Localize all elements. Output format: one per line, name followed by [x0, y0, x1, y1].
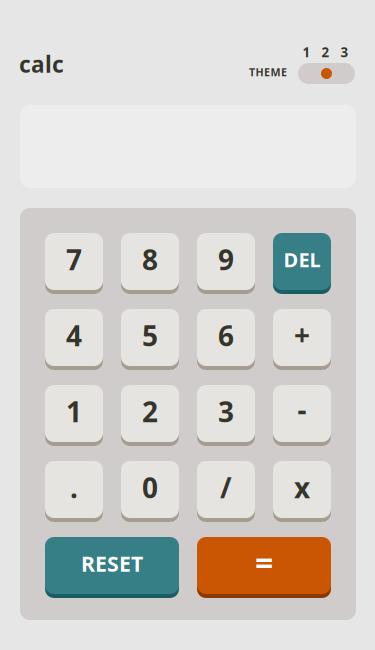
- staticText: +: [294, 316, 310, 353]
- button[interactable]: -: [273, 385, 331, 446]
- button[interactable]: x: [273, 461, 331, 522]
- staticText: 0: [142, 469, 158, 506]
- button[interactable]: /: [197, 461, 255, 522]
- staticText: H: [255, 65, 263, 79]
- staticText: =: [255, 541, 273, 584]
- staticText: T: [249, 65, 255, 79]
- staticText: .: [70, 469, 78, 506]
- staticText: x: [294, 469, 310, 506]
- staticText: 2: [321, 43, 329, 61]
- button[interactable]: 2: [121, 385, 179, 446]
- button[interactable]: .: [45, 461, 103, 522]
- staticText: 4: [66, 317, 82, 354]
- button[interactable]: 5: [121, 309, 179, 370]
- staticText: 3: [218, 393, 234, 430]
- button[interactable]: 7: [45, 233, 103, 294]
- staticText: E: [264, 65, 270, 79]
- button[interactable]: 3: [197, 385, 255, 446]
- staticText: 2: [142, 393, 158, 430]
- button[interactable]: 9: [197, 233, 255, 294]
- staticText: 7: [66, 241, 82, 278]
- button[interactable]: 6: [197, 309, 255, 370]
- staticText: 5: [142, 317, 158, 354]
- staticText: 6: [218, 317, 234, 354]
- staticText: 9: [218, 241, 234, 278]
- staticText: DEL: [283, 246, 320, 273]
- button[interactable]: 8: [121, 233, 179, 294]
- staticText: 1: [302, 43, 310, 61]
- button[interactable]: 1: [45, 385, 103, 446]
- staticText: -: [297, 391, 306, 428]
- button[interactable]: RESET: [45, 537, 179, 598]
- button[interactable]: =: [197, 537, 331, 598]
- button[interactable]: 4: [45, 309, 103, 370]
- staticText: 3: [340, 43, 348, 61]
- button[interactable]: Theme selector: [298, 63, 355, 84]
- staticText: RESET: [81, 549, 143, 578]
- button[interactable]: DEL: [273, 233, 331, 294]
- staticText: 1: [66, 393, 82, 430]
- staticText: calc: [19, 49, 64, 79]
- button[interactable]: 0: [121, 461, 179, 522]
- staticText: /: [220, 469, 232, 506]
- button[interactable]: +: [273, 309, 331, 370]
- staticText: 8: [142, 241, 158, 278]
- staticText: M: [270, 65, 280, 79]
- staticText: E: [281, 65, 287, 79]
